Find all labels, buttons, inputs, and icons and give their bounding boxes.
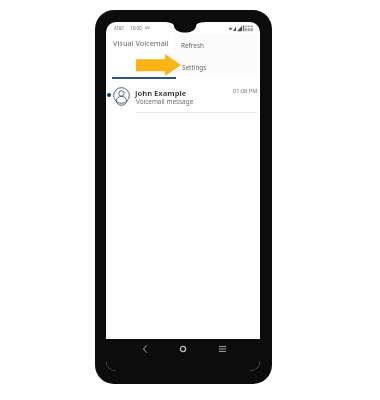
button[interactable]: Visual Voicemail (113, 38, 169, 48)
button[interactable]: John Example (106, 80, 260, 112)
staticText: Settings (182, 63, 207, 72)
staticText: AM (145, 26, 150, 30)
staticText: 01:08 PM (233, 87, 258, 95)
button[interactable]: Back (137, 341, 153, 357)
button[interactable]: Home (175, 341, 191, 357)
staticText: Refresh (181, 41, 204, 50)
button[interactable]: Settings (174, 55, 258, 77)
staticText: Voicemail message (136, 97, 194, 106)
staticText: Visual Voicemail (113, 38, 169, 48)
staticText: AT&T (114, 25, 125, 31)
staticText: 10:00 (130, 25, 142, 31)
button[interactable]: Refresh (174, 34, 258, 55)
staticText: John Example (135, 88, 187, 98)
button[interactable]: Recent apps (214, 341, 230, 357)
